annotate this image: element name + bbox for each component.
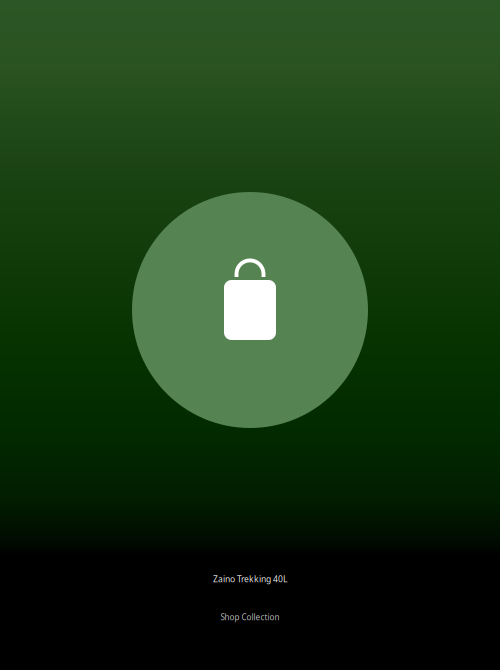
button[interactable]: Shopping bag bbox=[132, 192, 368, 428]
staticText: Shop Collection bbox=[220, 611, 279, 623]
button[interactable]: Shop Collection bbox=[190, 604, 310, 630]
staticText: Zaino Trekking 40L bbox=[213, 573, 287, 585]
